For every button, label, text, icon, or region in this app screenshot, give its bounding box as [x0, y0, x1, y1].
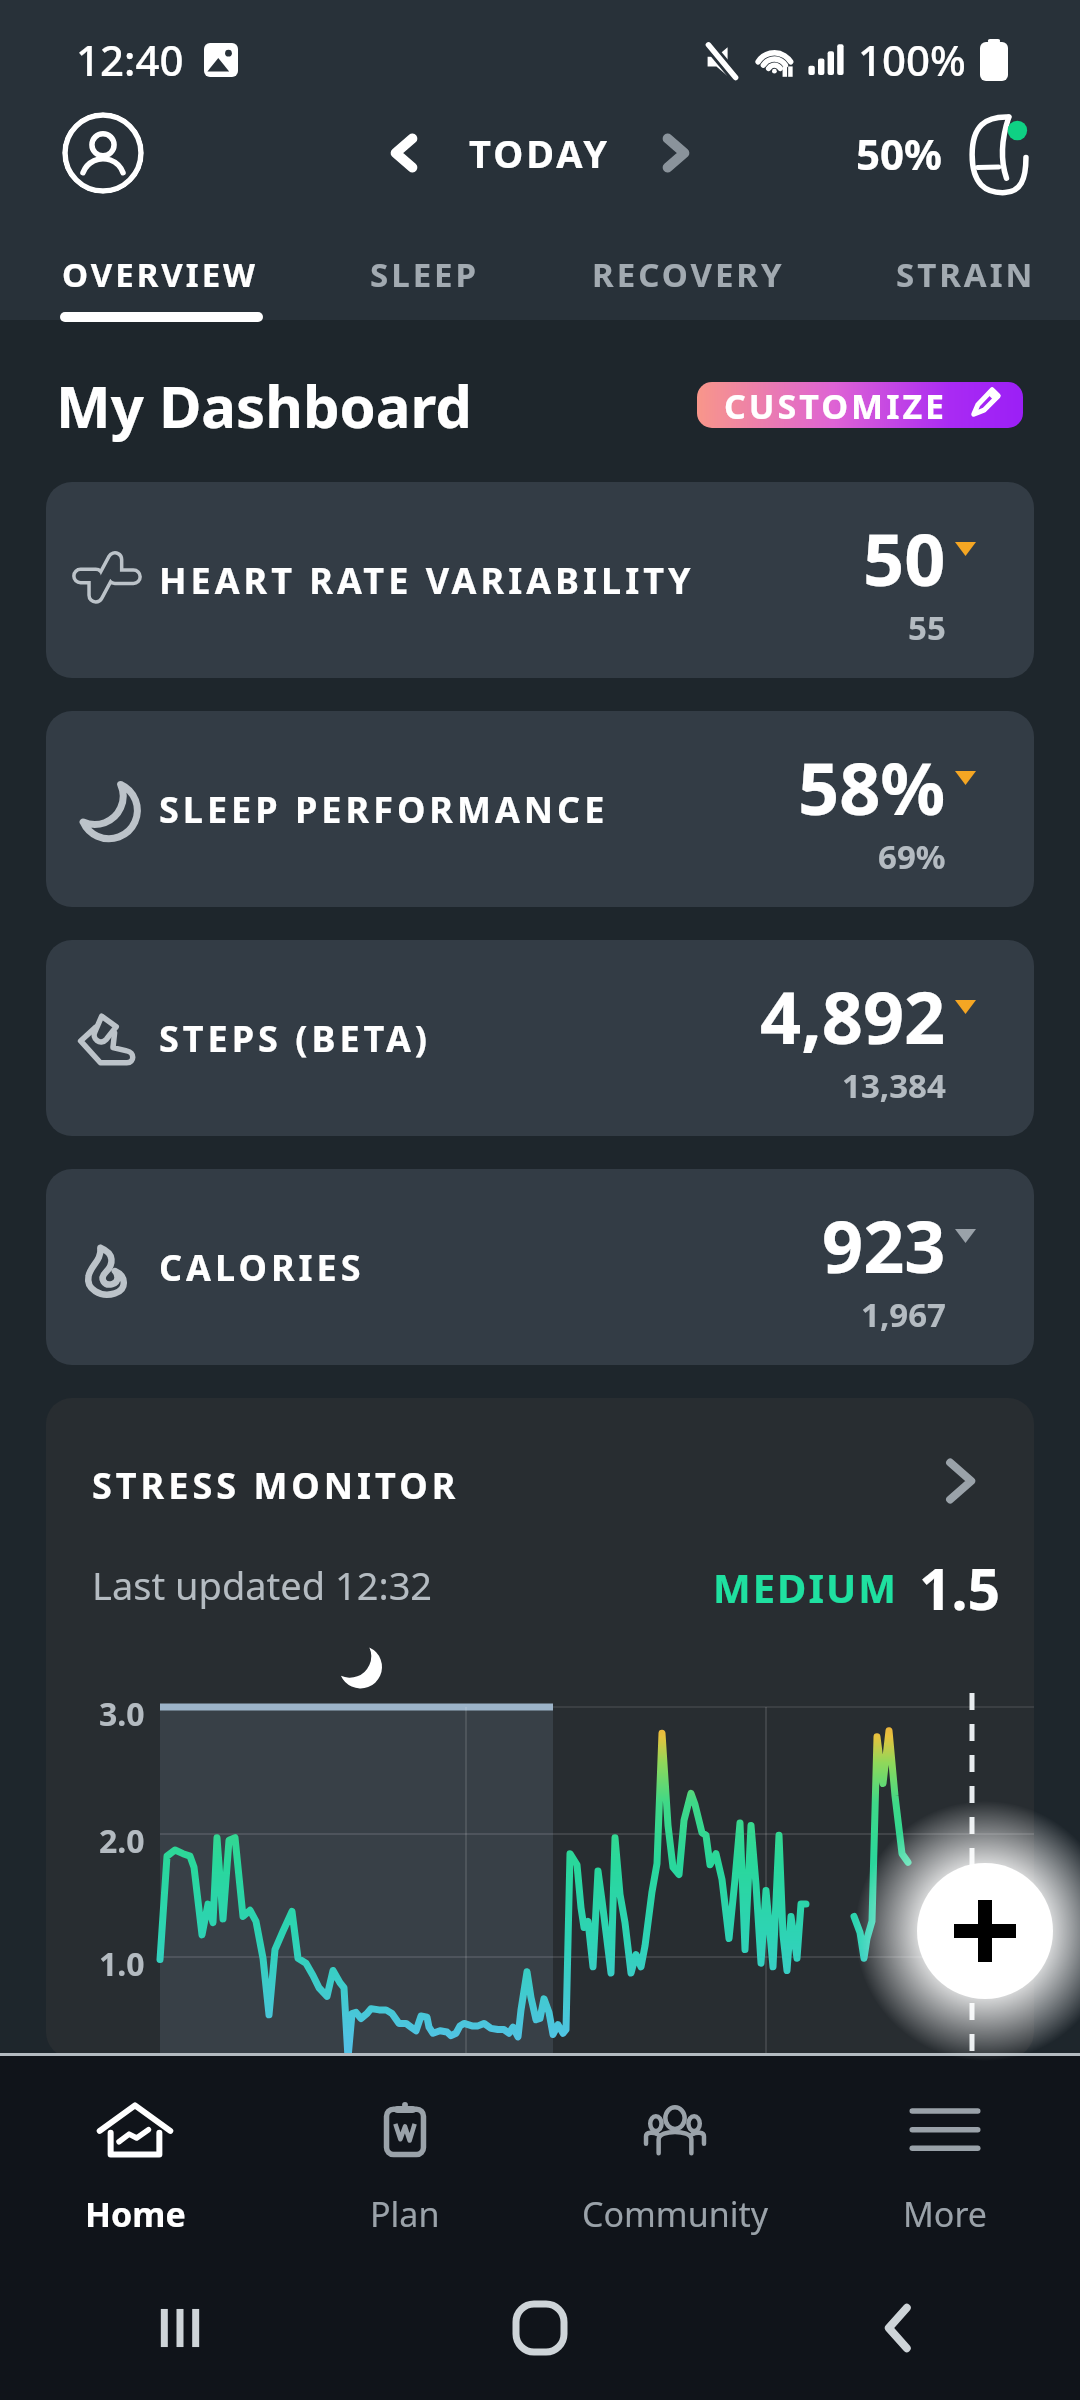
- button[interactable]: RECOVERY: [578, 210, 799, 320]
- button[interactable]: STRESS MONITOR: [46, 1398, 1034, 2058]
- staticText: CALORIES: [159, 1243, 365, 1292]
- staticText: TODAY: [469, 127, 611, 179]
- button[interactable]: Plan: [270, 2063, 540, 2253]
- staticText: STRESS MONITOR: [92, 1461, 460, 1510]
- staticText: STRAIN: [896, 252, 1036, 297]
- staticText: MEDIUM: [713, 1560, 898, 1614]
- staticText: Last updated 12:32: [92, 1559, 433, 1611]
- button[interactable]: Home: [0, 2063, 270, 2253]
- staticText: 1,967: [861, 1292, 946, 1337]
- button[interactable]: HEART RATE VARIABILITY: [46, 482, 1034, 678]
- staticText: 55: [908, 605, 946, 650]
- button[interactable]: OVERVIEW: [48, 210, 273, 320]
- staticText: 58%: [798, 738, 946, 836]
- button[interactable]: Community: [540, 2063, 810, 2253]
- staticText: 4,892: [760, 967, 946, 1065]
- staticText: SLEEP: [370, 252, 480, 297]
- button[interactable]: Profile: [62, 112, 144, 194]
- staticText: CUSTOMIZE: [724, 383, 948, 428]
- staticText: 69%: [878, 834, 946, 879]
- button[interactable]: SLEEP PERFORMANCE: [46, 711, 1034, 907]
- staticText: My Dashboard: [56, 366, 472, 445]
- staticText: STEPS (BETA): [159, 1014, 431, 1063]
- button[interactable]: Add: [917, 1863, 1053, 1999]
- button[interactable]: Next day: [639, 116, 713, 190]
- staticText: More: [903, 2191, 987, 2237]
- button[interactable]: STEPS (BETA): [46, 940, 1034, 1136]
- staticText: Community: [582, 2191, 769, 2237]
- staticText: HEART RATE VARIABILITY: [159, 556, 695, 605]
- button[interactable]: Device battery: [856, 108, 1040, 198]
- staticText: RECOVERY: [592, 252, 785, 297]
- button[interactable]: Previous day: [367, 116, 441, 190]
- button[interactable]: STRAIN: [882, 210, 1050, 320]
- staticText: 3.0: [99, 1692, 145, 1736]
- button[interactable]: More: [810, 2063, 1080, 2253]
- staticText: 50: [863, 509, 946, 607]
- staticText: 2.0: [99, 1819, 145, 1863]
- staticText: 12:40: [76, 31, 184, 88]
- staticText: OVERVIEW: [62, 252, 259, 297]
- staticText: Home: [85, 2191, 186, 2237]
- button[interactable]: CUSTOMIZE: [697, 382, 1023, 428]
- staticText: SLEEP PERFORMANCE: [159, 785, 609, 834]
- staticText: 50%: [856, 125, 942, 182]
- staticText: 1.0: [99, 1942, 145, 1986]
- staticText: 1.5: [919, 1549, 1001, 1627]
- staticText: 100%: [858, 31, 966, 88]
- button[interactable]: SLEEP: [356, 210, 494, 320]
- staticText: 923: [822, 1196, 946, 1294]
- button[interactable]: CALORIES: [46, 1169, 1034, 1365]
- staticText: Plan: [370, 2191, 440, 2237]
- staticText: 13,384: [842, 1063, 946, 1108]
